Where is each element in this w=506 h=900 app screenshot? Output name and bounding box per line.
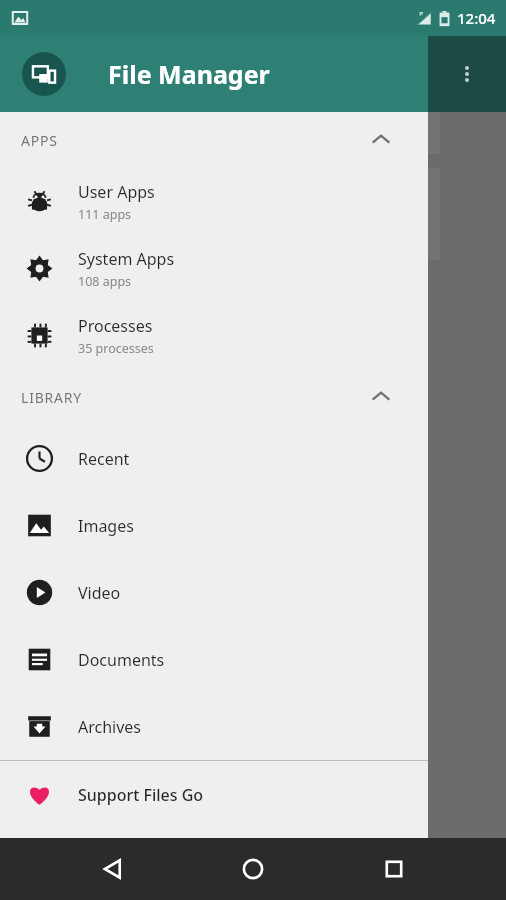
button[interactable]: Recents: [366, 841, 422, 897]
button[interactable]: LIBRARY: [0, 369, 428, 425]
staticText: Images: [78, 515, 134, 537]
button[interactable]: App icon: [22, 52, 66, 96]
staticText: 12:04: [457, 8, 496, 28]
button[interactable]: System Apps: [0, 235, 428, 302]
staticText: Video: [78, 582, 121, 604]
button[interactable]: Processes: [0, 302, 428, 369]
button[interactable]: More options: [443, 50, 491, 98]
button[interactable]: Video: [0, 559, 428, 626]
button[interactable]: APPS: [0, 112, 428, 168]
staticText: Processes: [78, 315, 153, 337]
staticText: User Apps: [78, 181, 155, 203]
staticText: LIBRARY: [21, 388, 83, 407]
button[interactable]: User Apps: [0, 168, 428, 235]
staticText: APPS: [21, 131, 58, 150]
button[interactable]: Recent: [0, 425, 428, 492]
button[interactable]: Images: [0, 492, 428, 559]
staticText: File Manager: [108, 57, 270, 91]
staticText: Archives: [78, 716, 142, 738]
button[interactable]: Home: [225, 841, 281, 897]
button[interactable]: Support Files Go: [0, 761, 428, 828]
button[interactable]: Archives: [0, 693, 428, 760]
staticText: 111 apps: [78, 206, 132, 223]
button[interactable]: Documents: [0, 626, 428, 693]
staticText: System Apps: [78, 248, 175, 270]
staticText: Documents: [78, 649, 165, 671]
staticText: 35 processes: [78, 340, 154, 357]
staticText: 108 apps: [78, 273, 132, 290]
staticText: Support Files Go: [78, 784, 204, 806]
staticText: Recent: [78, 448, 130, 470]
button[interactable]: Back: [85, 841, 141, 897]
